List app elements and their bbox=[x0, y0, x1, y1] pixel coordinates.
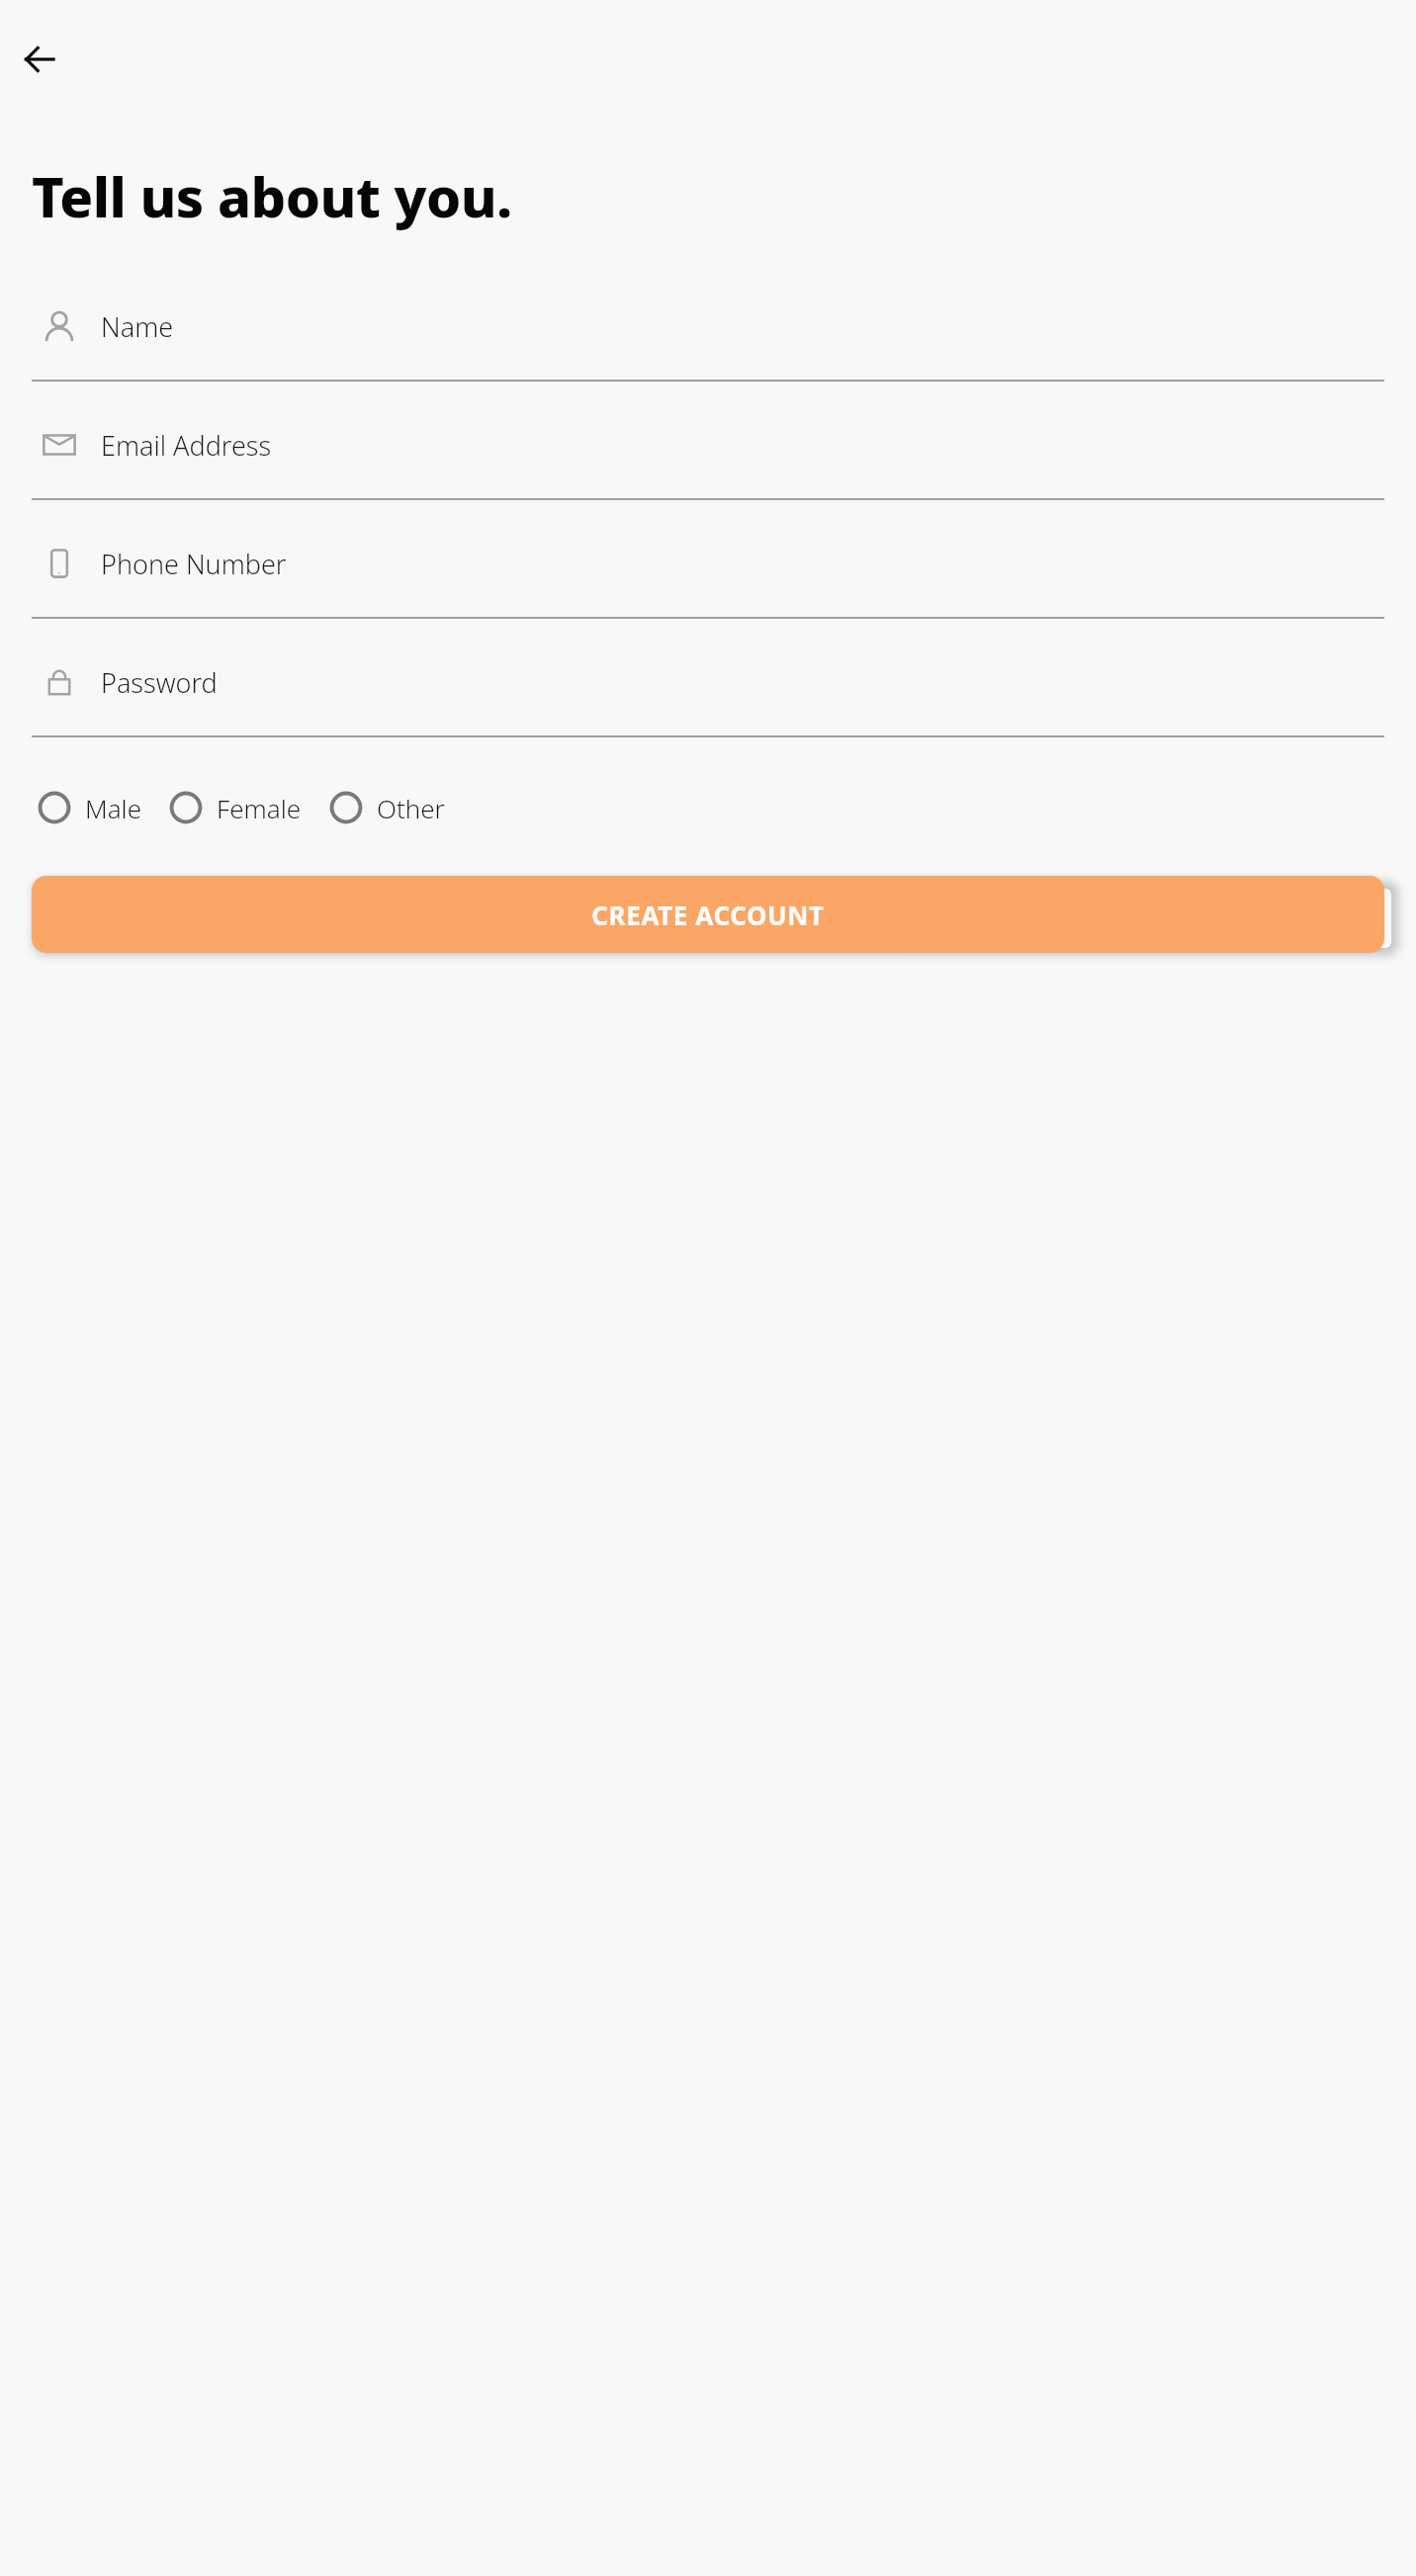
button[interactable]: Other bbox=[323, 779, 445, 836]
button[interactable]: CREATE ACCOUNT bbox=[32, 876, 1384, 953]
button[interactable]: Password bbox=[32, 650, 1384, 737]
button[interactable]: Back bbox=[14, 34, 65, 85]
button[interactable]: Email Address bbox=[32, 413, 1384, 500]
button[interactable]: Female bbox=[163, 779, 302, 836]
staticText: Phone Number bbox=[101, 546, 287, 582]
staticText: Email Address bbox=[101, 427, 272, 464]
staticText: Tell us about you. bbox=[32, 158, 512, 233]
button[interactable]: Phone Number bbox=[32, 532, 1384, 619]
button[interactable]: Male bbox=[32, 779, 141, 836]
staticText: Female bbox=[217, 791, 302, 825]
staticText: Name bbox=[101, 308, 174, 345]
staticText: Other bbox=[377, 791, 445, 825]
staticText: Male bbox=[85, 791, 141, 825]
staticText: Password bbox=[101, 664, 218, 701]
staticText: CREATE ACCOUNT bbox=[591, 898, 825, 932]
button[interactable]: Name bbox=[32, 295, 1384, 382]
